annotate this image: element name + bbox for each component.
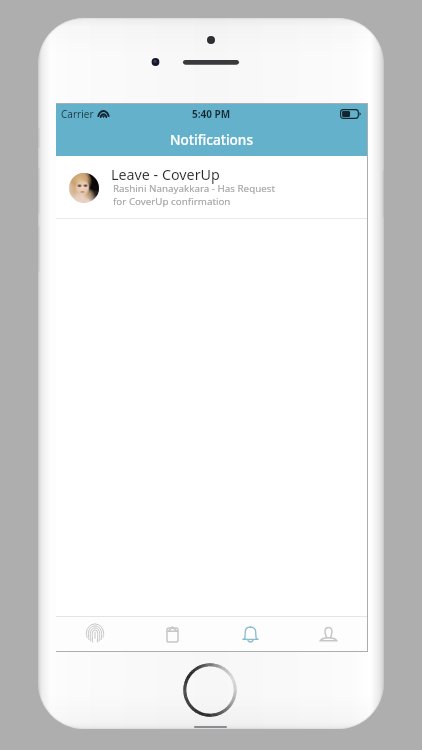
button[interactable]: Notifications (211, 617, 289, 651)
staticText: 5:40 PM (192, 107, 231, 121)
button[interactable]: Attendance (56, 617, 133, 651)
staticText: Rashini Nanayakkara - Has Request for Co… (113, 182, 275, 207)
button[interactable]: Tasks (133, 617, 211, 651)
staticText: Notifications (170, 130, 254, 149)
button[interactable]: Profile (289, 617, 367, 651)
staticText: Carrier (61, 107, 94, 121)
staticText: Leave - CoverUp (111, 165, 220, 184)
button[interactable]: Leave - CoverUp (56, 156, 367, 219)
